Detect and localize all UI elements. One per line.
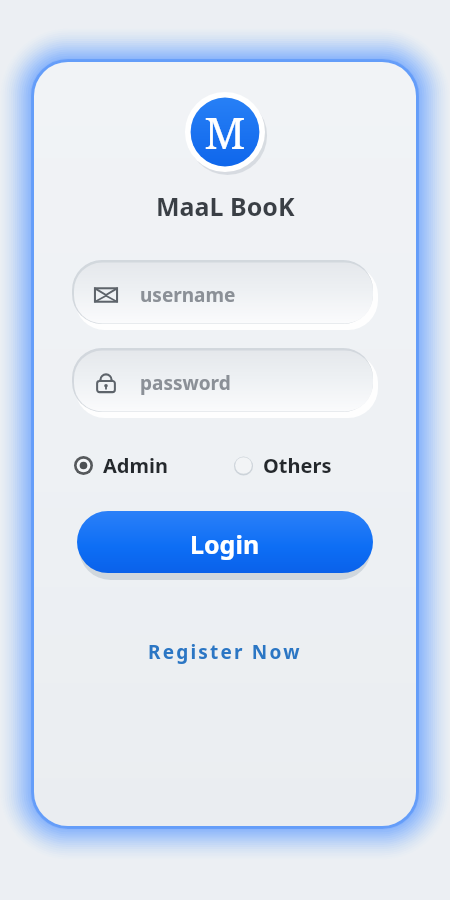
staticText: password — [140, 370, 231, 396]
staticText: M — [204, 102, 246, 162]
other: Password — [94, 371, 118, 395]
other: Email — [94, 283, 118, 307]
button[interactable]: Login — [77, 511, 373, 577]
button[interactable]: Others — [232, 448, 334, 483]
button[interactable]: Password — [72, 348, 378, 418]
button[interactable]: Email — [72, 260, 378, 330]
button[interactable]: Admin — [72, 448, 170, 483]
staticText: Others — [263, 452, 332, 479]
button[interactable]: Register Now — [134, 633, 316, 671]
staticText: Register Now — [148, 639, 302, 665]
staticText: MaaL BooK — [156, 189, 295, 223]
staticText: username — [140, 282, 236, 308]
staticText: Login — [190, 527, 260, 561]
staticText: Admin — [103, 452, 168, 479]
